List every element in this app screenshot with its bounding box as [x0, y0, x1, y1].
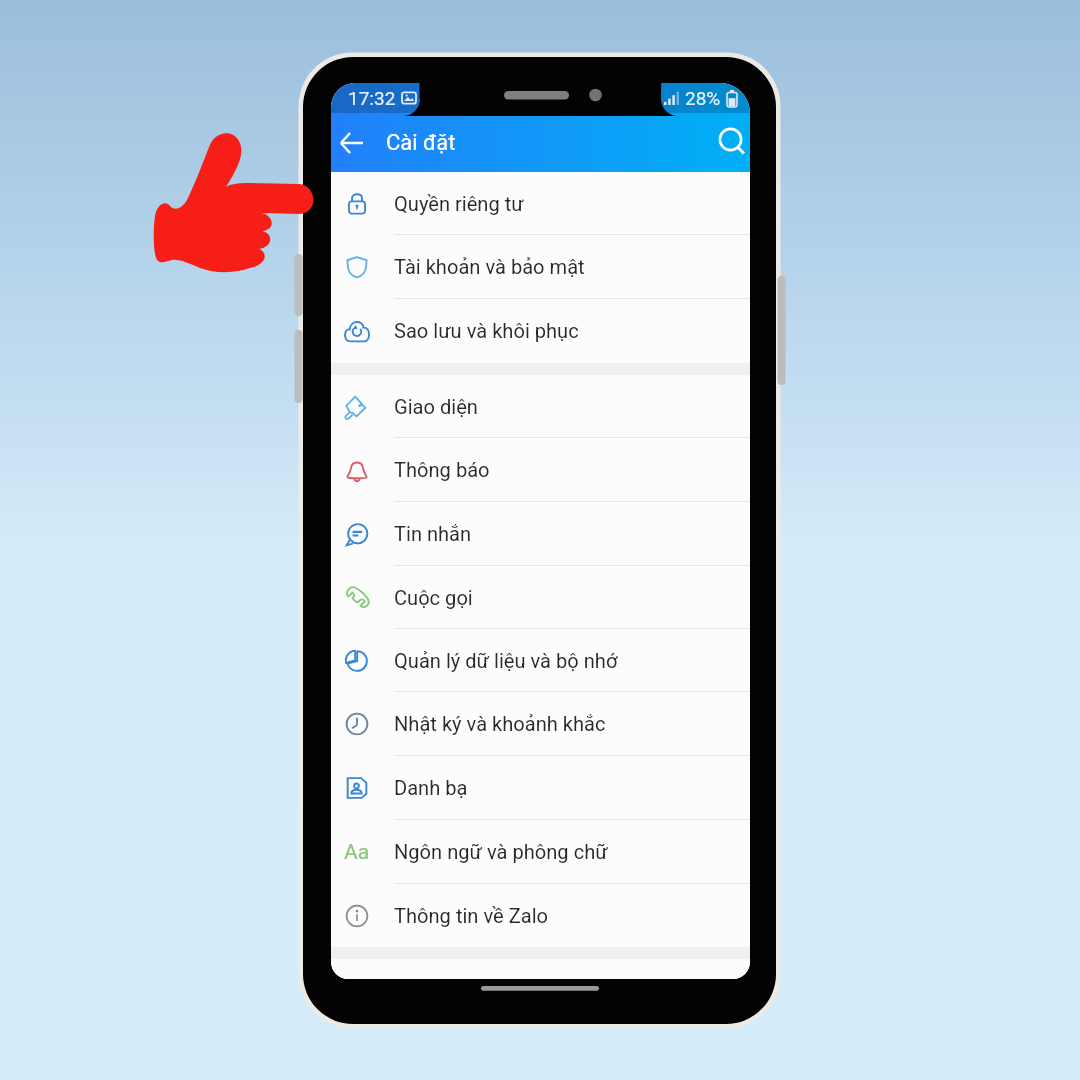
staticText: Aa	[344, 840, 370, 865]
button[interactable]: Quản lý dữ liệu và bộ nhớ	[331, 629, 750, 692]
staticText: Giao diện	[394, 395, 478, 419]
staticText: Thông báo	[394, 458, 490, 482]
button[interactable]: Back	[331, 120, 375, 166]
staticText: 28%	[685, 87, 721, 109]
staticText: Ngôn ngữ và phông chữ	[394, 840, 608, 864]
button[interactable]: Danh bạ	[331, 756, 750, 820]
staticText: 17:32	[348, 87, 396, 109]
button[interactable]: Sao lưu và khôi phục	[331, 299, 750, 363]
staticText: Sao lưu và khôi phục	[394, 319, 579, 343]
staticText: Thông tin về Zalo	[394, 904, 548, 928]
button[interactable]: Cuộc gọi	[331, 566, 750, 629]
staticText: Danh bạ	[394, 776, 468, 800]
button[interactable]: Tài khoản và bảo mật	[331, 235, 750, 299]
button[interactable]: Thông báo	[331, 438, 750, 502]
staticText: Cài đặt	[386, 130, 456, 156]
staticText: Quản lý dữ liệu và bộ nhớ	[394, 649, 618, 673]
button[interactable]: Aa	[331, 820, 750, 884]
staticText: Nhật ký và khoảnh khắc	[394, 712, 606, 736]
staticText: Tin nhắn	[394, 522, 472, 546]
button[interactable]: Giao diện	[331, 375, 750, 438]
button[interactable]: Nhật ký và khoảnh khắc	[331, 692, 750, 756]
staticText: Quyền riêng tư	[394, 192, 524, 216]
button[interactable]: Thông tin về Zalo	[331, 884, 750, 947]
staticText: Cuộc gọi	[394, 586, 473, 610]
button[interactable]: Quyền riêng tư	[331, 172, 750, 235]
button[interactable]: Search	[711, 121, 750, 165]
button[interactable]: Tin nhắn	[331, 502, 750, 566]
staticText: Tài khoản và bảo mật	[394, 255, 585, 279]
